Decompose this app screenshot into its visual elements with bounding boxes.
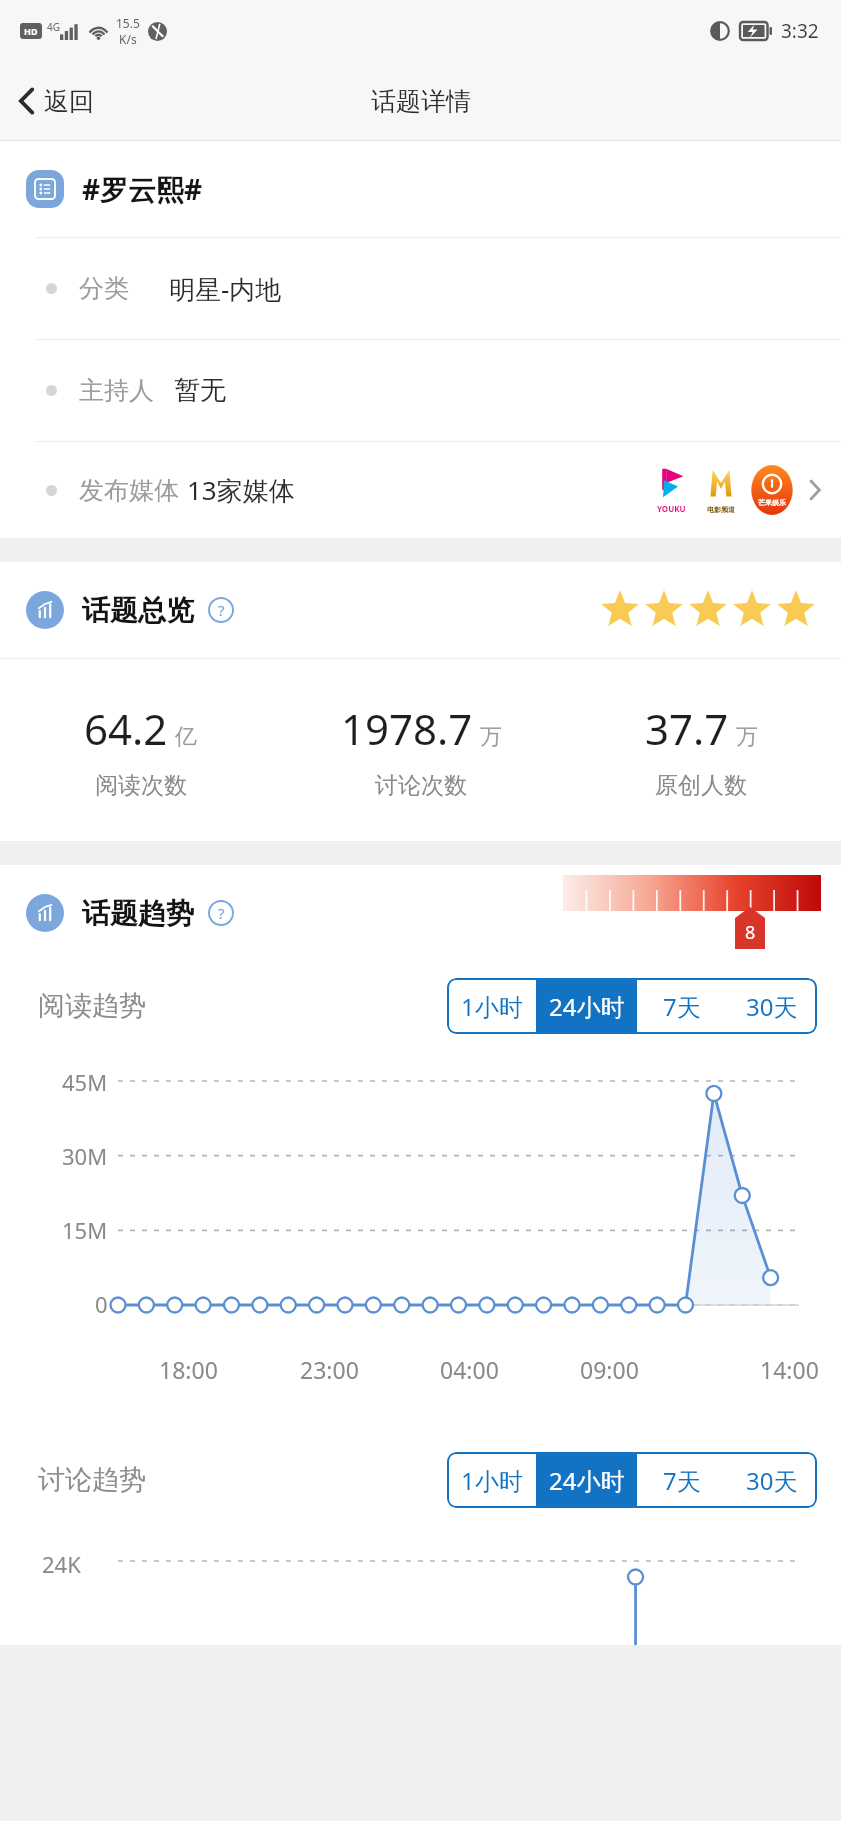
staticText: 1小时 bbox=[461, 990, 523, 1023]
button[interactable]: 30天 bbox=[727, 978, 817, 1034]
staticText: 04:00 bbox=[440, 1354, 499, 1385]
staticText: 37.7 bbox=[645, 700, 729, 757]
staticText: HD bbox=[24, 25, 38, 37]
staticText: K/s bbox=[119, 31, 137, 47]
button[interactable]: 返回 bbox=[0, 74, 110, 128]
staticText: 原创人数 bbox=[655, 771, 747, 800]
staticText: 18:00 bbox=[159, 1354, 218, 1385]
staticText: 3:32 bbox=[781, 18, 819, 44]
staticText: 话题总览 bbox=[82, 593, 194, 628]
staticText: 09:00 bbox=[580, 1354, 639, 1385]
staticText: 23:00 bbox=[300, 1354, 359, 1385]
button[interactable]: 24小时 bbox=[536, 978, 637, 1034]
staticText: 4G bbox=[47, 20, 60, 34]
button[interactable]: 分类 bbox=[0, 238, 841, 339]
staticText: 讨论次数 bbox=[375, 771, 467, 800]
staticText: 24K bbox=[42, 1549, 81, 1579]
button[interactable]: 24小时 bbox=[536, 1452, 637, 1508]
staticText: 14:00 bbox=[760, 1354, 819, 1385]
staticText: 暂无 bbox=[174, 374, 226, 407]
staticText: 30M bbox=[62, 1141, 108, 1171]
staticText: 电影频道 bbox=[707, 505, 735, 514]
button[interactable]: 1小时 bbox=[447, 1452, 536, 1508]
staticText: 讨论趋势 bbox=[38, 1463, 146, 1497]
staticText: 1小时 bbox=[461, 1464, 523, 1497]
button[interactable]: 7天 bbox=[637, 978, 727, 1034]
staticText: 话题趋势 bbox=[82, 896, 194, 931]
staticText: 返回 bbox=[44, 86, 94, 117]
staticText: 0 bbox=[95, 1289, 108, 1319]
staticText: 24小时 bbox=[549, 1464, 625, 1497]
staticText: 45M bbox=[62, 1067, 108, 1097]
button[interactable]: 主持人 bbox=[0, 340, 841, 441]
staticText: 亿 bbox=[175, 723, 197, 751]
staticText: ? bbox=[218, 903, 225, 923]
button[interactable]: #罗云熙# bbox=[0, 141, 841, 237]
staticText: 15.5 bbox=[116, 15, 140, 31]
staticText: ? bbox=[218, 600, 225, 620]
staticText: 发布媒体 bbox=[79, 475, 179, 506]
staticText: 13家媒体 bbox=[187, 472, 295, 508]
staticText: 30天 bbox=[746, 1464, 798, 1497]
staticText: YOUKU bbox=[657, 503, 686, 514]
staticText: #罗云熙# bbox=[82, 170, 203, 208]
staticText: 万 bbox=[736, 723, 758, 751]
staticText: 主持人 bbox=[79, 375, 154, 406]
staticText: 30天 bbox=[746, 990, 798, 1023]
button[interactable]: 发布媒体 bbox=[0, 442, 841, 538]
staticText: 明星-内地 bbox=[169, 271, 282, 307]
staticText: 64.2 bbox=[84, 700, 168, 757]
button[interactable]: 帮助 bbox=[208, 900, 234, 926]
staticText: 8 bbox=[745, 920, 756, 945]
staticText: 万 bbox=[480, 723, 502, 751]
staticText: 7天 bbox=[663, 1464, 701, 1497]
staticText: 阅读次数 bbox=[95, 771, 187, 800]
staticText: 阅读趋势 bbox=[38, 989, 146, 1023]
staticText: 分类 bbox=[79, 273, 129, 304]
staticText: 15M bbox=[62, 1215, 108, 1245]
staticText: 24小时 bbox=[549, 990, 625, 1023]
staticText: 1978.7 bbox=[341, 700, 473, 757]
staticText: 7天 bbox=[663, 990, 701, 1023]
button[interactable]: 1小时 bbox=[447, 978, 536, 1034]
button[interactable]: 帮助 bbox=[208, 597, 234, 623]
button[interactable]: 30天 bbox=[727, 1452, 817, 1508]
staticText: 话题详情 bbox=[371, 86, 471, 117]
staticText: 芒果娱乐 bbox=[758, 498, 786, 507]
button[interactable]: 7天 bbox=[637, 1452, 727, 1508]
